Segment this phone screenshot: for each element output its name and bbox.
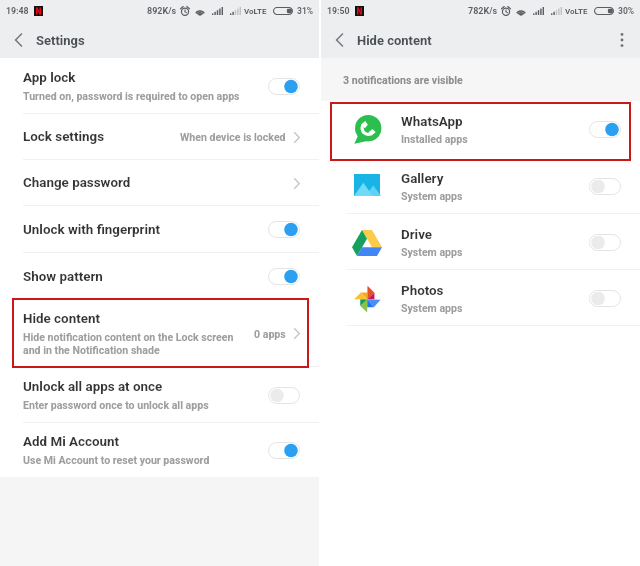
staticText: System apps — [401, 302, 463, 314]
button[interactable]: Back — [321, 22, 357, 58]
staticText: Installed apps — [401, 133, 468, 145]
staticText: Hide notification content on the Lock sc… — [23, 331, 234, 357]
button[interactable]: Photos — [321, 270, 640, 326]
staticText: Add Mi Account — [23, 434, 120, 450]
staticText: When device is locked — [180, 131, 286, 143]
staticText: Lock settings — [23, 129, 105, 145]
button[interactable]: Change password — [0, 160, 319, 206]
staticText: 0 apps — [254, 328, 286, 340]
staticText: Use Mi Account to reset your password — [23, 454, 210, 466]
staticText: Unlock all apps at once — [23, 379, 163, 395]
button[interactable]: Gallery — [321, 158, 640, 214]
button[interactable]: Lock settings — [0, 114, 319, 160]
staticText: Hide content — [23, 311, 100, 327]
button[interactable]: WhatsApp — [321, 101, 640, 158]
staticText: 782K/s — [468, 6, 498, 17]
staticText: Drive — [401, 227, 433, 243]
staticText: WhatsApp — [401, 114, 463, 130]
staticText: 31% — [297, 6, 314, 16]
staticText: 3 notifications are visible — [343, 74, 463, 86]
button[interactable]: More options — [607, 22, 637, 58]
button[interactable]: Show pattern — [0, 253, 319, 300]
staticText: Photos — [401, 283, 444, 299]
staticText: 19:48 — [6, 6, 29, 16]
staticText: Hide content — [357, 33, 432, 48]
button[interactable]: Add Mi Account — [0, 423, 319, 477]
staticText: Enter password once to unlock all apps — [23, 399, 209, 411]
button[interactable]: Unlock all apps at once — [0, 367, 319, 423]
staticText: VoLTE — [244, 7, 267, 16]
staticText: App lock — [23, 70, 76, 86]
staticText: VoLTE — [565, 7, 588, 16]
staticText: 30% — [618, 6, 635, 16]
button[interactable]: Unlock with fingerprint — [0, 206, 319, 253]
staticText: Show pattern — [23, 269, 103, 285]
staticText: 19:50 — [327, 6, 350, 16]
staticText: Turned on, password is required to open … — [23, 90, 240, 102]
staticText: System apps — [401, 190, 463, 202]
button[interactable]: Back — [0, 22, 36, 58]
button[interactable]: App lock — [0, 58, 319, 114]
button[interactable]: Hide content — [0, 300, 319, 367]
staticText: System apps — [401, 246, 463, 258]
staticText: 892K/s — [147, 6, 177, 17]
staticText: Gallery — [401, 171, 444, 187]
staticText: Unlock with fingerprint — [23, 222, 161, 238]
staticText: Settings — [36, 33, 85, 48]
staticText: Change password — [23, 175, 131, 191]
button[interactable]: Drive — [321, 214, 640, 270]
